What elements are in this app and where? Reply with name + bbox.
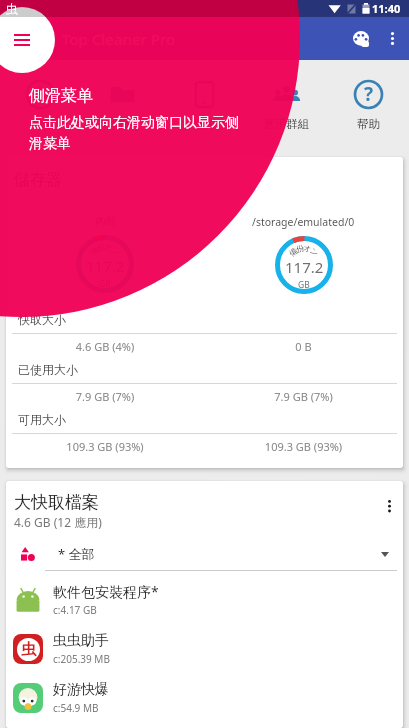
staticText: c:205.39 MB — [53, 652, 110, 666]
staticText: * 全部 — [58, 545, 95, 563]
staticText: 4.6 GB (12 應用) — [14, 514, 102, 530]
staticText: 117.2 — [285, 257, 324, 277]
staticText: c:54.9 MB — [53, 701, 99, 715]
button[interactable]: ? — [327, 60, 409, 157]
button[interactable]: 應用 — [163, 60, 245, 157]
staticText: 側滑菜单 — [29, 86, 93, 106]
button[interactable]: 好游快爆 — [6, 673, 403, 722]
button[interactable]: Open navigation menu — [0, 7, 55, 73]
staticText: 檔案 — [111, 117, 134, 131]
button[interactable]: Change theme — [345, 23, 376, 54]
staticText: 好游快爆 — [53, 681, 109, 699]
staticText: 点击此处或向右滑动窗口以显示侧滑菜单 — [29, 114, 239, 152]
staticText: 109.3 GB (93%) — [6, 439, 204, 454]
button[interactable]: 清理 — [0, 60, 81, 157]
button[interactable]: 軟件包安裝程序* — [6, 575, 403, 624]
button[interactable]: More options — [378, 25, 406, 53]
staticText: 已使用大小 — [18, 362, 78, 377]
staticText: 應用群組 — [263, 117, 309, 131]
staticText: 可用大小 — [18, 412, 66, 427]
staticText: 軟件包安裝程序* — [53, 582, 159, 601]
staticText: 7.9 GB (7%) — [204, 389, 403, 404]
staticText: c:4.17 GB — [53, 603, 97, 617]
staticText: 大快取檔案 — [14, 492, 99, 513]
staticText: /storage/emulated/0 — [252, 215, 355, 229]
staticText: 虫虫助手 — [53, 632, 109, 650]
staticText: 帮助 — [357, 117, 380, 131]
staticText: 0 B — [204, 339, 403, 354]
staticText: 清理 — [29, 117, 52, 131]
staticText: 4.6 GB (4%) — [6, 339, 204, 354]
staticText: ? — [364, 81, 374, 107]
staticText: 11:40 — [372, 1, 401, 16]
button[interactable]: 檔案 — [81, 60, 163, 157]
button[interactable]: 應用群組 — [245, 60, 327, 157]
button[interactable]: More options — [375, 492, 403, 520]
staticText: 7.9 GB (7%) — [6, 389, 204, 404]
staticText: 虫 — [21, 640, 36, 659]
button[interactable]: Open navigation menu — [8, 24, 38, 54]
staticText: 應用 — [193, 117, 216, 131]
button[interactable]: * 全部 — [6, 538, 403, 571]
button[interactable]: 虫 — [6, 624, 403, 673]
staticText: 109.3 GB (93%) — [204, 439, 403, 454]
staticText: GB — [99, 278, 111, 290]
staticText: 快取大小 — [18, 312, 66, 327]
staticText: GB — [298, 279, 310, 291]
staticText: 虫 — [6, 1, 18, 16]
